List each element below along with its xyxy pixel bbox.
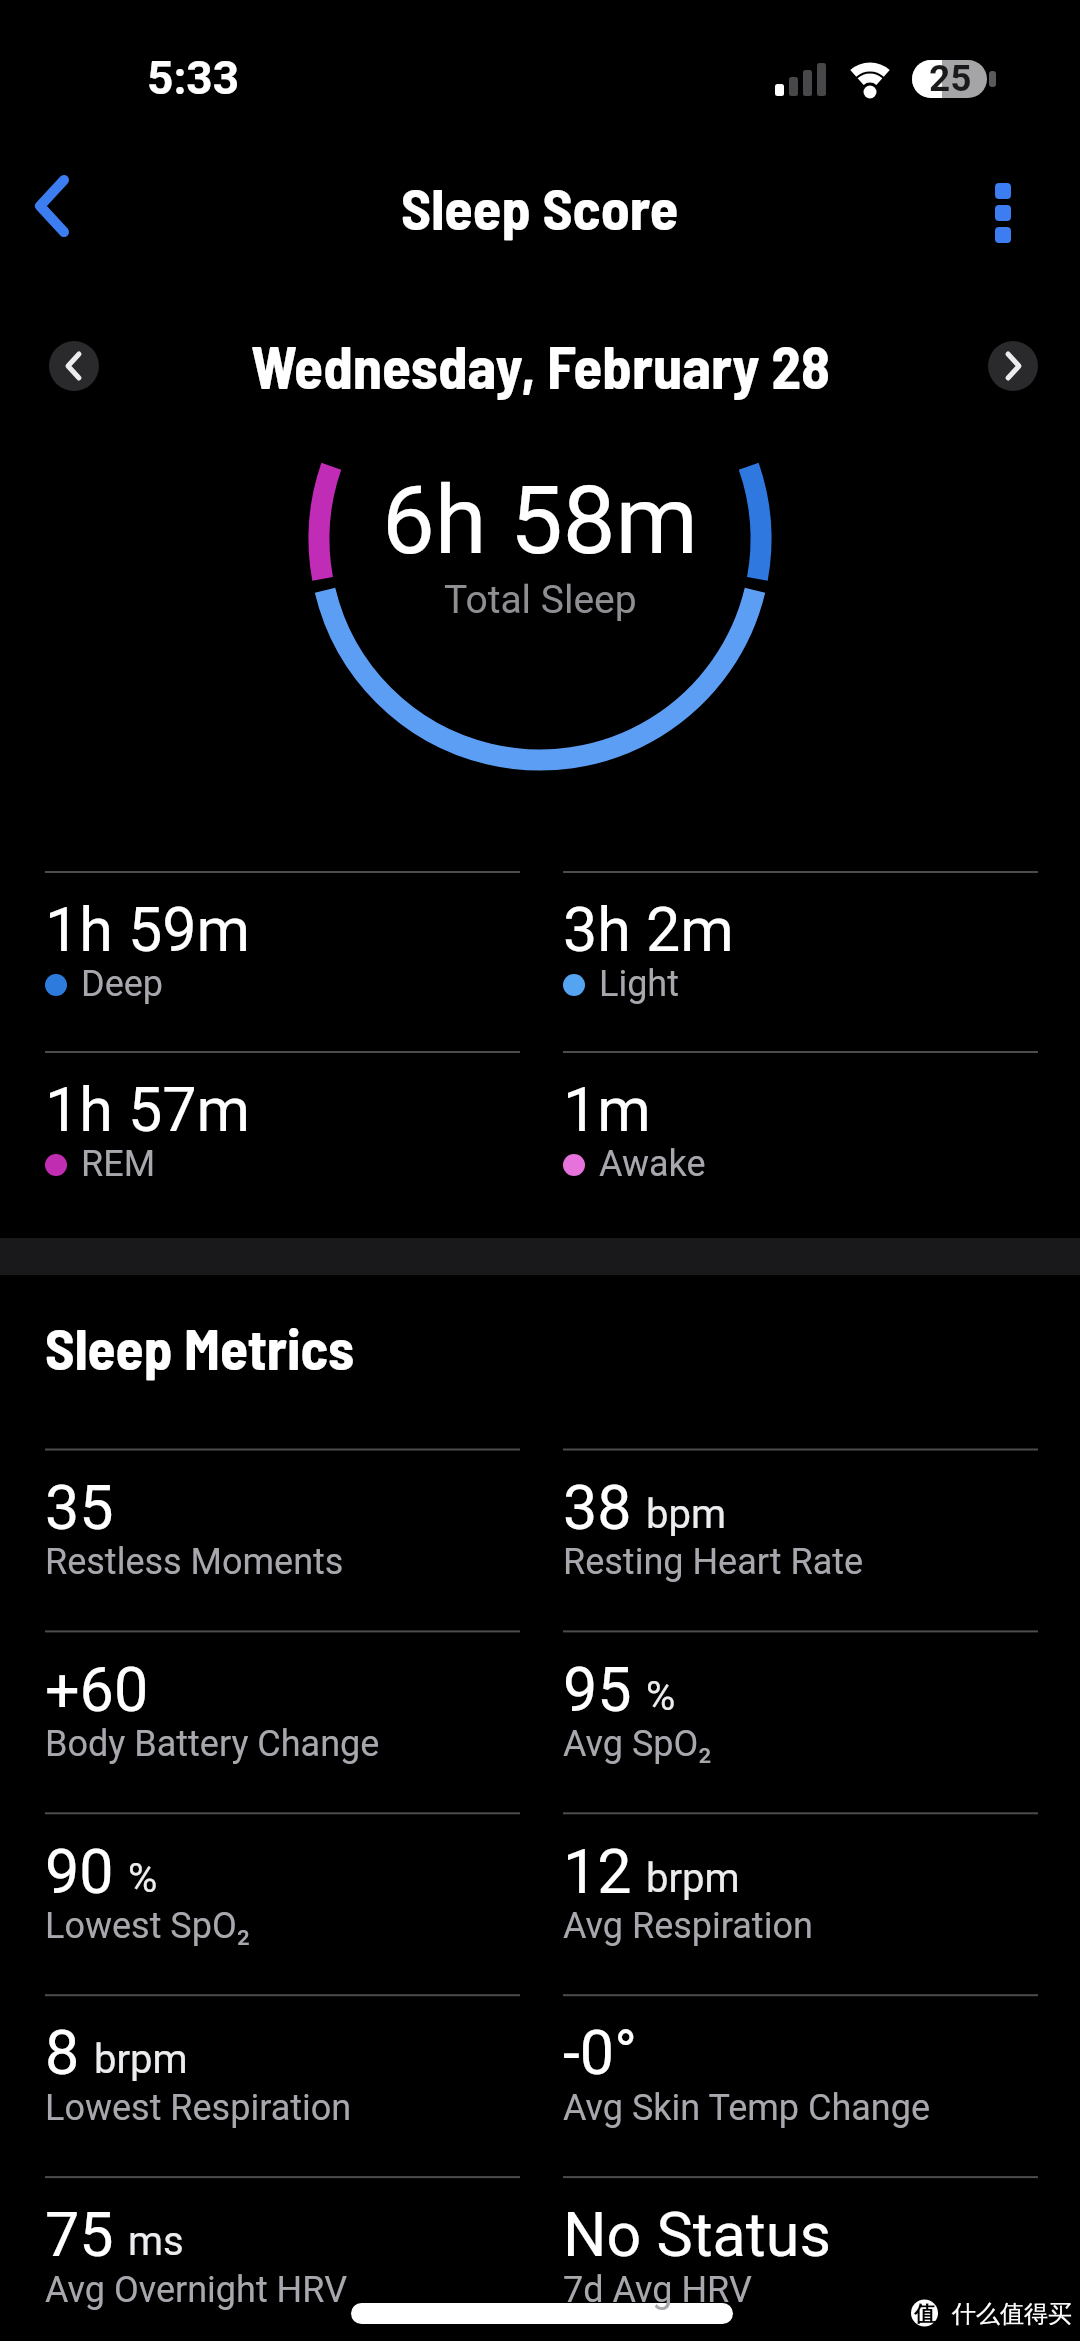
staticText: Restless Moments: [45, 1541, 344, 1583]
staticText: 75: [45, 2199, 114, 2270]
staticText: Lowest SpO₂: [45, 1905, 250, 1947]
staticText: Awake: [599, 1143, 706, 1185]
staticText: +60: [45, 1654, 149, 1725]
staticText: Avg Respiration: [563, 1905, 813, 1947]
staticText: Avg SpO₂: [563, 1723, 712, 1765]
button[interactable]: [49, 341, 99, 391]
staticText: bpm: [646, 1491, 726, 1538]
staticText: 7d Avg HRV: [563, 2269, 752, 2311]
staticText: 3h 2m: [563, 894, 734, 965]
staticText: Wednesday, February 28: [251, 330, 830, 401]
staticText: Resting Heart Rate: [563, 1541, 864, 1583]
staticText: -0°: [563, 2017, 637, 2088]
staticText: 25: [929, 57, 972, 100]
staticText: Avg Overnight HRV: [45, 2269, 348, 2311]
staticText: 1h 59m: [45, 894, 251, 965]
staticText: brpm: [94, 2036, 188, 2083]
staticText: ms: [128, 2218, 184, 2265]
staticText: 90: [45, 1836, 114, 1907]
staticText: Deep: [81, 963, 164, 1005]
staticText: Total Sleep: [444, 577, 637, 623]
staticText: 什么值得买: [952, 2299, 1072, 2329]
staticText: Avg Skin Temp Change: [563, 2087, 931, 2129]
staticText: 1h 57m: [45, 1074, 251, 1145]
staticText: 8: [45, 2017, 80, 2088]
staticText: Light: [599, 963, 679, 1005]
staticText: 35: [45, 1472, 114, 1543]
button[interactable]: [25, 168, 80, 243]
button[interactable]: [983, 171, 1023, 251]
staticText: Sleep Score: [401, 172, 679, 242]
staticText: 12: [563, 1836, 632, 1907]
staticText: Lowest Respiration: [45, 2087, 352, 2129]
staticText: 6h 58m: [382, 466, 699, 576]
staticText: brpm: [646, 1855, 740, 1902]
staticText: REM: [81, 1143, 156, 1185]
staticText: 值: [914, 2301, 935, 2327]
staticText: 95: [563, 1654, 632, 1725]
staticText: 38: [563, 1472, 632, 1543]
staticText: %: [646, 1673, 676, 1720]
staticText: 1m: [563, 1074, 651, 1145]
staticText: No Status: [563, 2199, 831, 2270]
staticText: Sleep Metrics: [45, 1313, 355, 1381]
staticText: Body Battery Change: [45, 1723, 380, 1765]
staticText: %: [128, 1855, 158, 1902]
button[interactable]: [988, 341, 1038, 391]
staticText: 5:33: [147, 51, 240, 105]
